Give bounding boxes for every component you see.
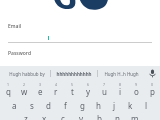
button[interactable]: Voice input [144,66,160,81]
staticText: p [150,86,155,97]
staticText: w [21,86,28,97]
staticText: 0 [151,82,154,87]
button[interactable]: hhhhhhhhhhhh [51,66,97,81]
staticText: z [24,113,28,120]
button[interactable]: k [122,97,138,113]
staticText: k [128,100,133,111]
staticText: r [54,86,58,97]
staticText: Hugh H..h Hugh [104,71,139,77]
staticText: 3 [39,82,42,87]
staticText: Hugh habbub by [9,71,45,77]
button[interactable]: h [90,97,106,113]
button[interactable]: b [90,113,108,120]
staticText: y [86,86,91,97]
button[interactable]: z [16,113,35,120]
staticText: o [134,86,139,97]
button[interactable]: n [108,113,126,120]
button[interactable]: 8 [112,81,128,97]
staticText: Email [8,23,22,30]
staticText: c [61,113,65,120]
staticText: 9 [135,82,138,87]
button[interactable]: 3 [32,81,48,97]
staticText: Password [8,50,31,57]
staticText: i [119,86,122,97]
staticText: h [96,100,101,111]
button[interactable]: Hugh habbub by [4,66,50,81]
button[interactable]: m [126,113,144,120]
staticText: b [97,113,102,120]
staticText: e [38,86,43,97]
staticText: a [12,100,17,111]
staticText: 6 [87,82,90,87]
button[interactable]: 1 [0,81,16,97]
staticText: f [64,100,67,111]
staticText: 4 [55,82,58,87]
button[interactable]: s [23,97,40,113]
button[interactable]: j [106,97,122,113]
staticText: 2 [23,82,26,87]
staticText: g [80,100,85,111]
button[interactable]: 6 [80,81,96,97]
button[interactable]: a [6,97,23,113]
staticText: x [42,113,47,120]
staticText: t [71,86,74,97]
staticText: m [131,113,139,120]
staticText: l [145,100,148,111]
button[interactable]: f [57,97,74,113]
button[interactable]: l [138,97,154,113]
button[interactable]: 2 [16,81,32,97]
staticText: n [115,113,120,120]
staticText: 1 [7,82,10,87]
button[interactable]: 9 [128,81,144,97]
staticText: s [30,100,34,111]
button[interactable]: v [72,113,90,120]
staticText: q [6,86,11,97]
button[interactable]: x [35,113,54,120]
button[interactable] [8,30,152,43]
staticText: 7 [103,82,106,87]
button[interactable] [8,57,152,68]
staticText: d [46,100,51,111]
staticText: u [102,86,107,97]
staticText: 5 [71,82,74,87]
staticText: hhhhhhhhhhhh [56,71,92,77]
button[interactable]: d [40,97,57,113]
staticText: j [113,100,116,111]
button[interactable]: 7 [96,81,112,97]
button[interactable]: 4 [48,81,64,97]
button[interactable]: g [74,97,90,113]
staticText: v [79,113,84,120]
button[interactable]: Hugh H..h Hugh [98,66,144,81]
button[interactable]: c [54,113,72,120]
button[interactable]: 0 [144,81,160,97]
button[interactable]: 5 [64,81,80,97]
staticText: 8 [119,82,122,87]
